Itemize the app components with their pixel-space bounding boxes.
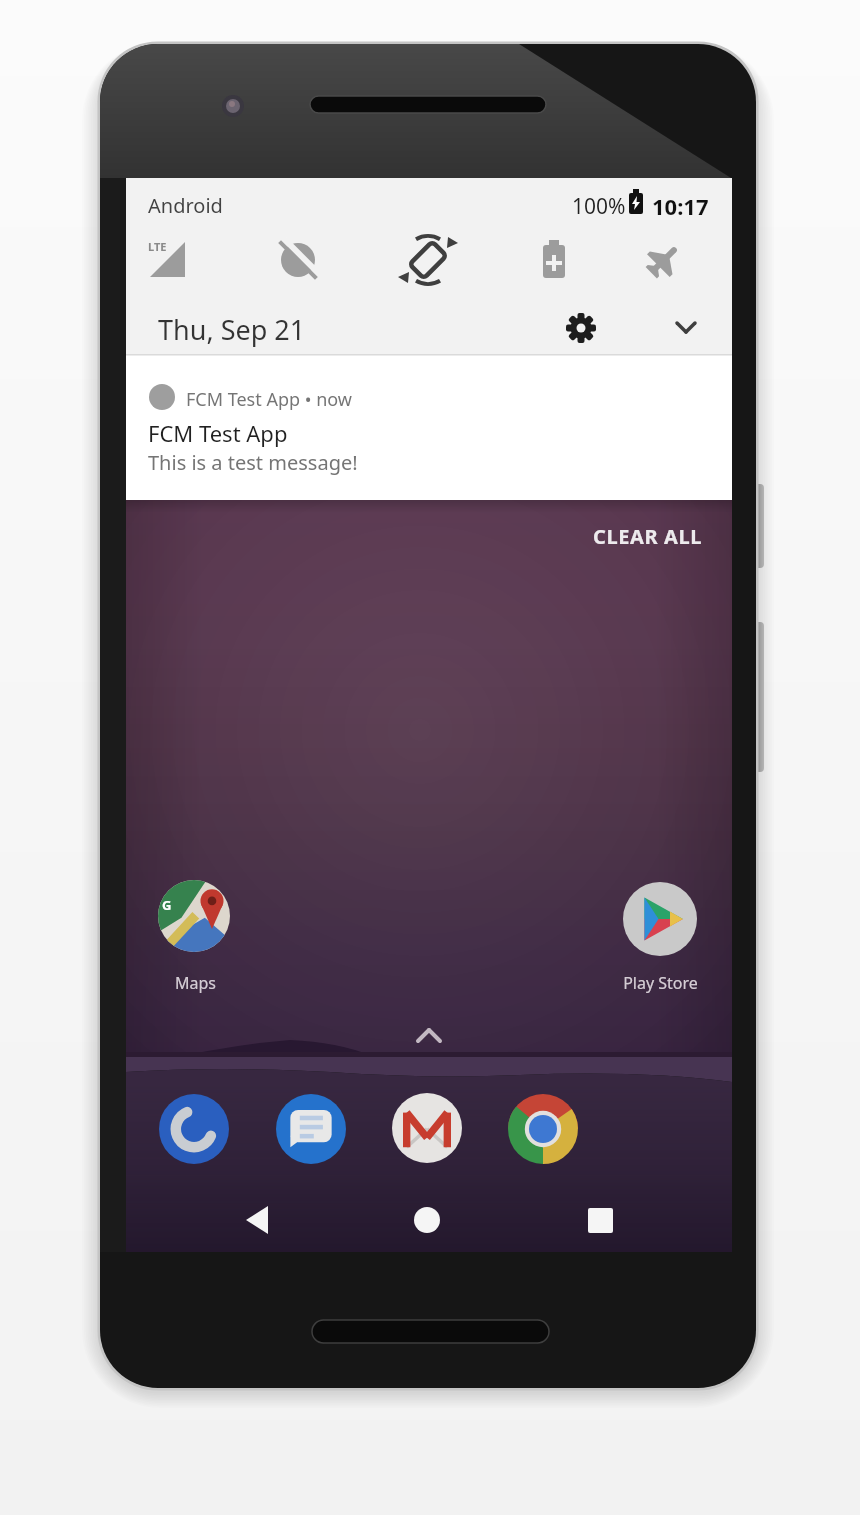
staticText: CLEAR ALL [593, 523, 702, 549]
staticText: LTE [148, 239, 167, 254]
staticText: Thu, Sep 21 [158, 311, 306, 348]
button[interactable] [618, 874, 702, 1004]
button[interactable] [392, 1093, 462, 1163]
button[interactable] [276, 1094, 346, 1164]
button[interactable] [542, 300, 620, 356]
staticText: G [162, 896, 172, 914]
button[interactable] [152, 874, 236, 1004]
button[interactable] [648, 300, 724, 356]
staticText: This is a test message! [148, 449, 358, 476]
button[interactable] [126, 356, 732, 500]
button[interactable] [222, 1192, 294, 1248]
staticText: Maps [175, 972, 216, 994]
staticText: 10:17 [652, 191, 709, 221]
staticText: Play Store [623, 972, 698, 994]
staticText: FCM Test App • now [186, 387, 352, 412]
button[interactable] [159, 1094, 229, 1164]
button[interactable] [391, 1192, 463, 1248]
staticText: 100% [572, 192, 626, 216]
button[interactable] [560, 512, 720, 560]
button[interactable] [399, 1015, 459, 1055]
button[interactable] [508, 1094, 578, 1164]
staticText: FCM Test App [148, 418, 288, 448]
button[interactable] [561, 1192, 633, 1248]
staticText: Android [148, 192, 223, 219]
